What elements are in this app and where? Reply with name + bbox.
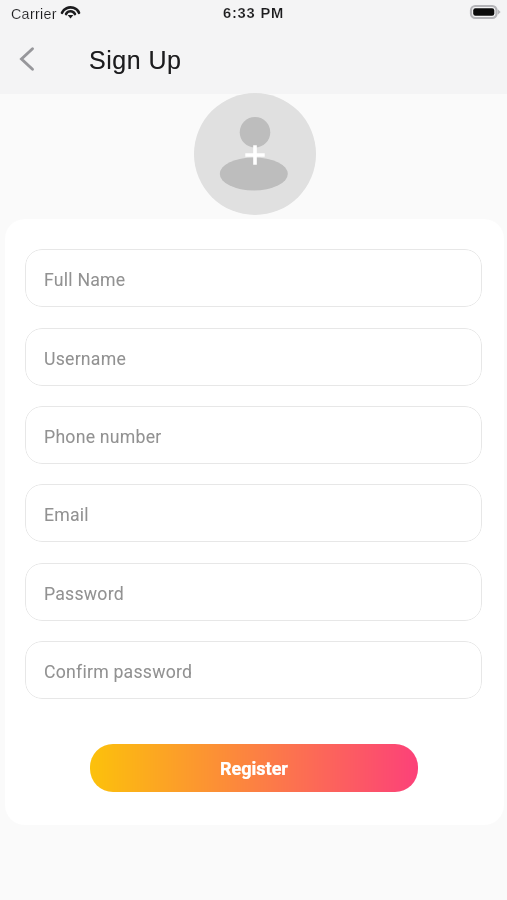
staticText: Email [44, 505, 89, 526]
button[interactable]: Add profile photo [194, 93, 316, 215]
button[interactable]: Password [25, 563, 482, 621]
staticText: Phone number [44, 427, 162, 448]
staticText: Full Name [44, 270, 126, 291]
staticText: Username [44, 349, 127, 370]
button[interactable]: Phone number [25, 406, 482, 464]
button[interactable]: Username [25, 328, 482, 386]
button[interactable]: Back [4, 36, 50, 82]
staticText: Register [220, 758, 288, 779]
button[interactable]: Confirm password [25, 641, 482, 699]
staticText: Confirm password [44, 662, 193, 683]
staticText: Password [44, 584, 124, 605]
staticText: Sign Up [89, 46, 182, 74]
staticText: Sign Up [89, 46, 182, 74]
button[interactable]: Full Name [25, 249, 482, 307]
staticText: Carrier [11, 6, 57, 22]
button[interactable]: Register [90, 744, 418, 792]
staticText: 6:33 PM [0, 5, 507, 21]
button[interactable]: Email [25, 484, 482, 542]
